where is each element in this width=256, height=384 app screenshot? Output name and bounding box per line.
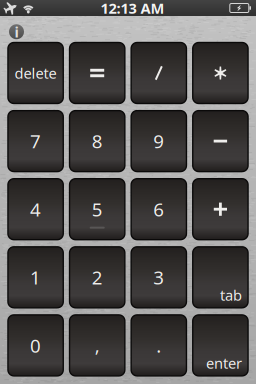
staticText: 6: [153, 197, 164, 222]
staticText: 8: [92, 129, 103, 153]
button[interactable]: Minus: [193, 111, 248, 172]
staticText: 2: [92, 265, 103, 290]
button[interactable]: 5: [69, 179, 125, 240]
button[interactable]: Plus: [193, 179, 248, 240]
button[interactable]: tab: [193, 247, 248, 308]
button[interactable]: delete: [8, 42, 63, 103]
staticText: 7: [30, 129, 41, 153]
button[interactable]: Divide: [131, 42, 186, 103]
staticText: 5: [92, 197, 103, 222]
staticText: delete: [15, 63, 57, 83]
button[interactable]: Equals: [69, 42, 125, 103]
button[interactable]: 2: [69, 247, 125, 308]
staticText: 0: [30, 333, 41, 358]
staticText: enter: [206, 353, 242, 373]
staticText: 1: [30, 265, 41, 290]
button[interactable]: ,: [69, 315, 125, 376]
staticText: .: [156, 333, 161, 358]
button[interactable]: 1: [8, 247, 63, 308]
button[interactable]: 3: [131, 247, 186, 308]
button[interactable]: 9: [131, 111, 186, 172]
button[interactable]: 7: [8, 111, 63, 172]
staticText: ,: [95, 333, 100, 358]
staticText: i: [14, 22, 18, 41]
button[interactable]: Info: [9, 24, 24, 39]
button[interactable]: 6: [131, 179, 186, 240]
button[interactable]: 4: [8, 179, 63, 240]
button[interactable]: Multiply: [193, 42, 248, 103]
staticText: tab: [220, 285, 242, 305]
staticText: 9: [153, 129, 164, 153]
button[interactable]: enter: [193, 315, 248, 376]
staticText: 3: [153, 265, 164, 290]
button[interactable]: 8: [69, 111, 125, 172]
staticText: 4: [30, 197, 41, 222]
button[interactable]: .: [131, 315, 186, 376]
button[interactable]: 0: [8, 315, 63, 376]
staticText: 12:13 AM: [100, 0, 164, 18]
